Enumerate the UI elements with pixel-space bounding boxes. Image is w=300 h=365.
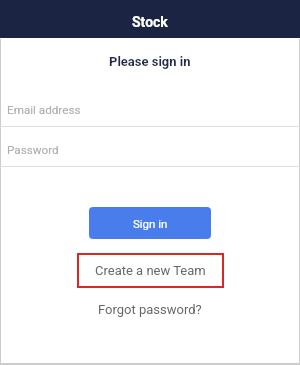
staticText: Email address xyxy=(7,103,81,117)
button[interactable]: Forgot password? xyxy=(92,300,208,319)
button[interactable]: Password xyxy=(0,143,300,166)
button[interactable]: Email address xyxy=(0,103,300,126)
staticText: Stock xyxy=(132,14,168,30)
button[interactable]: Sign in xyxy=(89,207,211,239)
staticText: Sign in xyxy=(133,217,168,230)
staticText: Forgot password? xyxy=(98,302,202,317)
staticText: Create a new Team xyxy=(95,263,206,278)
button[interactable]: Create a new Team xyxy=(77,253,224,288)
staticText: Please sign in xyxy=(109,54,191,69)
staticText: Password xyxy=(7,143,59,157)
